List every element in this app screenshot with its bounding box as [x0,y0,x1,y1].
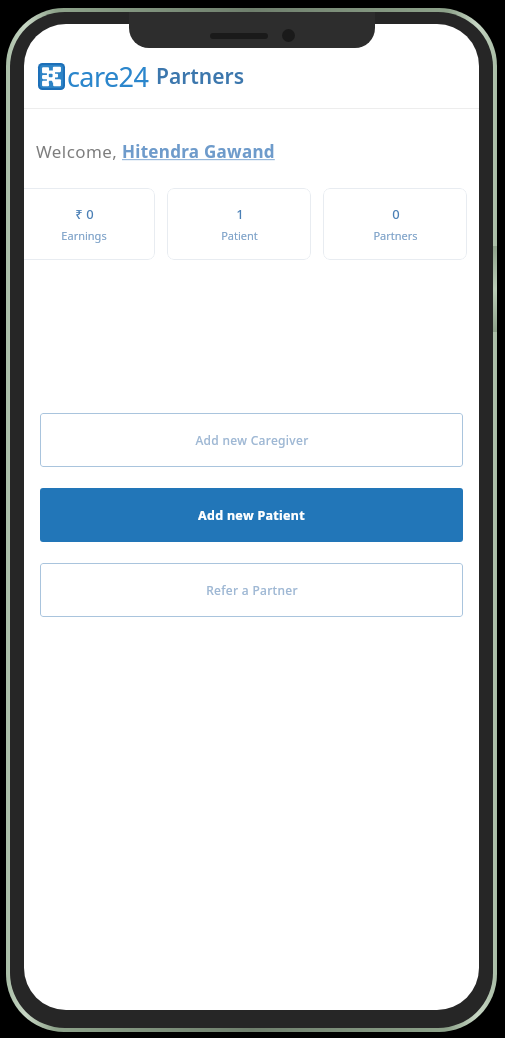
button[interactable]: ₹ 0 [24,188,155,260]
staticText: care24 [67,58,149,95]
staticText: Add new Caregiver [195,432,309,448]
button[interactable]: Hitendra Gawand [122,140,275,163]
button[interactable]: 0 [323,188,467,260]
staticText: Patient [221,228,258,243]
staticText: 1 [236,205,244,223]
staticText: 0 [392,205,400,223]
staticText: Refer a Partner [206,582,298,598]
button[interactable]: care24 Partners home [38,58,244,95]
button[interactable]: Add new Patient [40,488,463,542]
staticText: Partners [373,228,418,243]
staticText: ₹ 0 [75,205,94,223]
button[interactable]: Refer a Partner [40,563,463,617]
staticText: Welcome, [36,140,122,163]
staticText: Partners [156,62,244,91]
staticText: Earnings [61,228,107,243]
button[interactable]: Add new Caregiver [40,413,463,467]
button[interactable]: 1 [167,188,311,260]
staticText: Add new Patient [198,507,305,524]
